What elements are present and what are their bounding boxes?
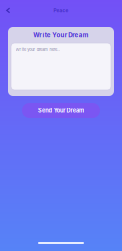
button[interactable]: Back: [2, 3, 15, 17]
staticText: Send Your Dream: [38, 107, 84, 114]
staticText: Peace: [53, 8, 68, 13]
staticText: Write your dream here...: [15, 47, 60, 52]
button[interactable]: Send Your Dream: [22, 103, 100, 118]
staticText: Write Your Dream: [33, 31, 89, 39]
